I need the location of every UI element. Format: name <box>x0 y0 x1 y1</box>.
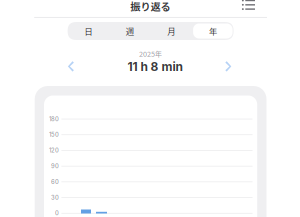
button[interactable]: 年 <box>192 22 234 40</box>
staticText: 150 <box>49 131 59 138</box>
staticText: 2025年 <box>139 48 162 59</box>
staticText: 30 <box>51 194 59 201</box>
button[interactable]: 日 <box>68 22 109 40</box>
button[interactable]: 月 <box>151 22 192 40</box>
button[interactable]: List view <box>242 0 255 10</box>
staticText: 振り返る <box>131 0 171 14</box>
staticText: 11 h 8 min <box>127 59 182 74</box>
staticText: 120 <box>49 147 59 154</box>
staticText: 180 <box>49 115 59 123</box>
button[interactable]: Next year <box>225 61 231 72</box>
staticText: 年 <box>209 25 217 37</box>
staticText: 0 <box>55 210 59 217</box>
button[interactable]: Previous year <box>68 61 74 72</box>
staticText: 90 <box>51 163 59 170</box>
button[interactable]: 週 <box>109 22 151 40</box>
staticText: 週 <box>126 25 134 37</box>
staticText: 月 <box>167 25 175 37</box>
staticText: 日 <box>84 25 92 37</box>
staticText: 60 <box>51 178 59 185</box>
